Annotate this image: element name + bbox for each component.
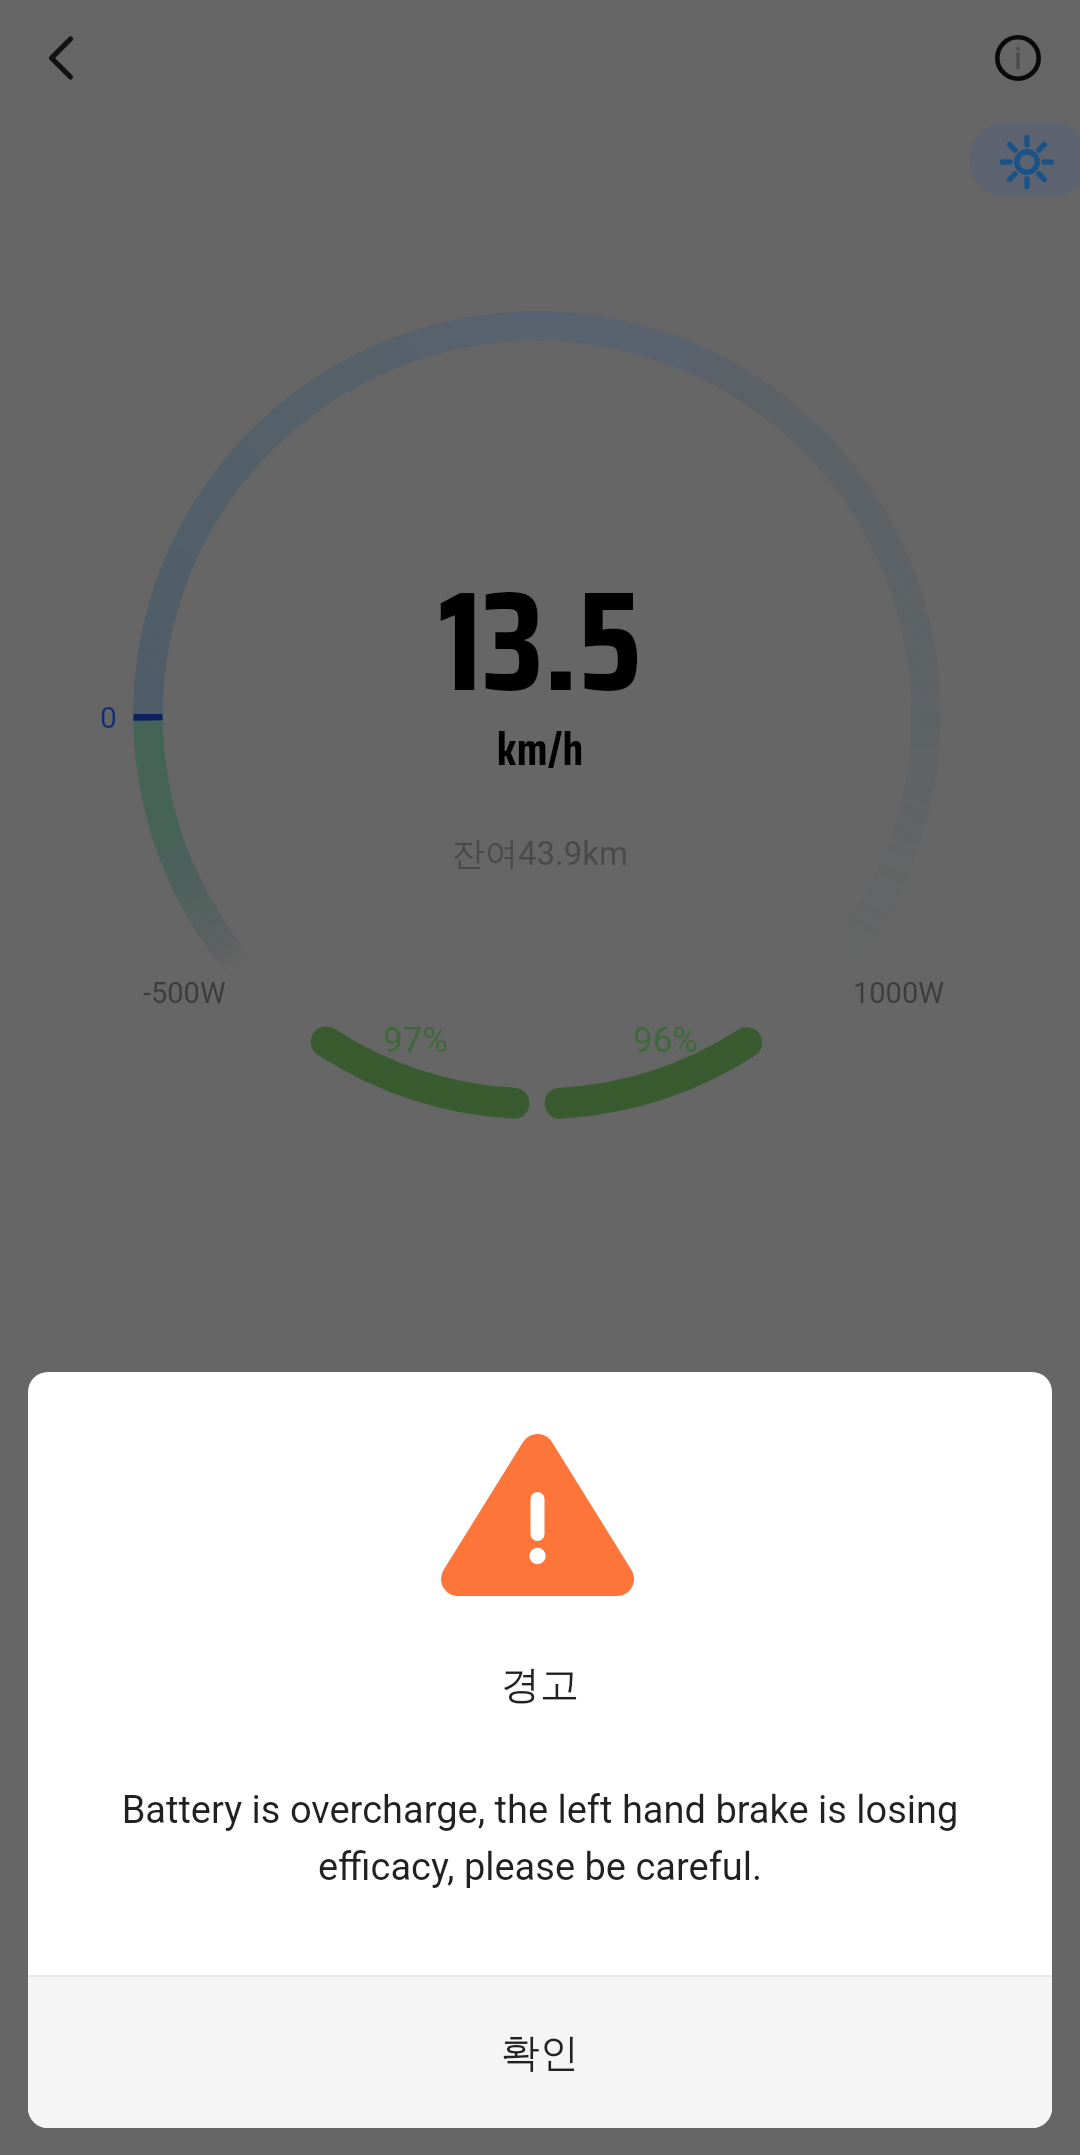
staticText: Battery is overcharge, the left hand bra…: [90, 1788, 990, 1889]
staticText: 확인: [501, 2028, 579, 2077]
button[interactable]: Back: [19, 16, 103, 100]
staticText: 97%: [383, 1020, 448, 1061]
staticText: 잔여43.9km: [0, 833, 1080, 875]
staticText: 13.5: [0, 530, 1080, 752]
staticText: 0: [100, 700, 117, 735]
button[interactable]: Brightness: [969, 122, 1080, 197]
staticText: 1000W: [853, 976, 944, 1010]
staticText: -500W: [143, 976, 226, 1010]
button[interactable]: 확인: [28, 1977, 1052, 2128]
staticText: 96%: [633, 1020, 698, 1061]
button[interactable]: Information: [976, 16, 1060, 100]
staticText: km/h: [0, 713, 1080, 785]
staticText: 경고: [28, 1660, 1052, 1709]
